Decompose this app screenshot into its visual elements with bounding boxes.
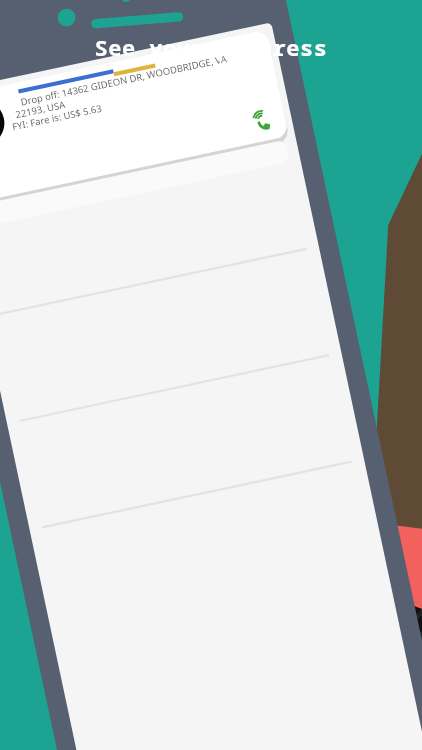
button[interactable]: See your progress promotional screen bbox=[0, 0, 422, 750]
